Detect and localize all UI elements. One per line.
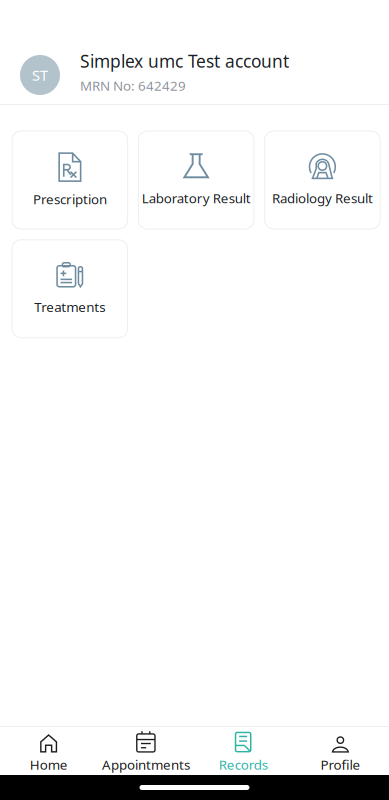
button[interactable]: Laboratory Result <box>138 131 254 229</box>
staticText: Appointments <box>102 756 190 773</box>
button[interactable]: Records <box>194 727 292 775</box>
button[interactable]: Profile <box>292 727 389 775</box>
staticText: Radiology Result <box>272 189 373 207</box>
button[interactable]: Radiology Result <box>265 131 380 229</box>
staticText: Laboratory Result <box>142 189 251 207</box>
staticText: ST <box>32 65 48 85</box>
staticText: Profile <box>320 756 360 773</box>
button[interactable]: Home <box>0 727 97 775</box>
staticText: Treatments <box>34 298 105 316</box>
staticText: Simplex umc Test account <box>80 50 289 73</box>
staticText: Prescription <box>33 190 107 208</box>
staticText: Records <box>219 756 268 773</box>
button[interactable]: Treatments <box>12 240 127 338</box>
staticText: MRN No: 642429 <box>80 77 186 94</box>
button[interactable]: Appointments <box>97 727 194 775</box>
staticText: Home <box>30 756 68 773</box>
button[interactable]: Prescription <box>12 131 128 229</box>
